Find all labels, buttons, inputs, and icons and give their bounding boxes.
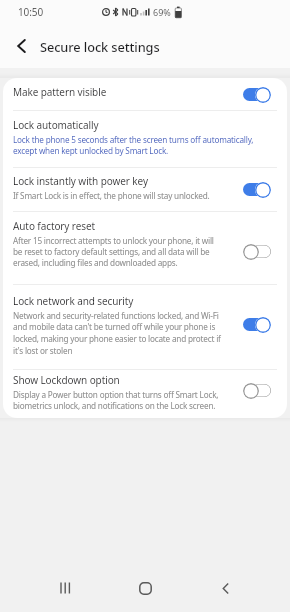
staticText: Lock automatically (13, 118, 99, 132)
button[interactable] (243, 243, 271, 260)
staticText: After 15 incorrect attempts to unlock yo… (13, 235, 214, 268)
button[interactable]: Show Lockdown option (3, 370, 287, 418)
staticText: Display a Power button option that turns… (13, 389, 219, 411)
staticText: Auto factory reset (13, 219, 95, 233)
staticText: 10:50 (18, 5, 44, 19)
staticText: Lock instantly with power key (13, 174, 148, 188)
button[interactable] (243, 316, 271, 333)
button[interactable] (41, 564, 89, 612)
button[interactable]: Make pattern visible (3, 78, 287, 110)
button[interactable] (5, 30, 37, 62)
staticText: Make pattern visible (13, 85, 107, 99)
staticText: 69% (153, 6, 171, 18)
button[interactable]: Lock automatically (3, 111, 287, 167)
staticText: Network and security-related functions l… (13, 310, 221, 357)
button[interactable] (243, 181, 271, 198)
button[interactable]: Lock instantly with power key (3, 168, 287, 211)
button[interactable]: Lock network and security (3, 285, 287, 369)
button[interactable] (243, 382, 271, 399)
button[interactable] (243, 86, 271, 103)
staticText: If Smart Lock is in effect, the phone wi… (13, 190, 210, 201)
staticText: Secure lock settings (40, 38, 160, 55)
staticText: Show Lockdown option (13, 373, 120, 387)
button[interactable] (201, 564, 249, 612)
staticText: Lock network and security (13, 294, 134, 308)
staticText: Lock the phone 5 seconds after the scree… (13, 134, 254, 156)
button[interactable]: Auto factory reset (3, 212, 287, 284)
button[interactable] (121, 564, 169, 612)
